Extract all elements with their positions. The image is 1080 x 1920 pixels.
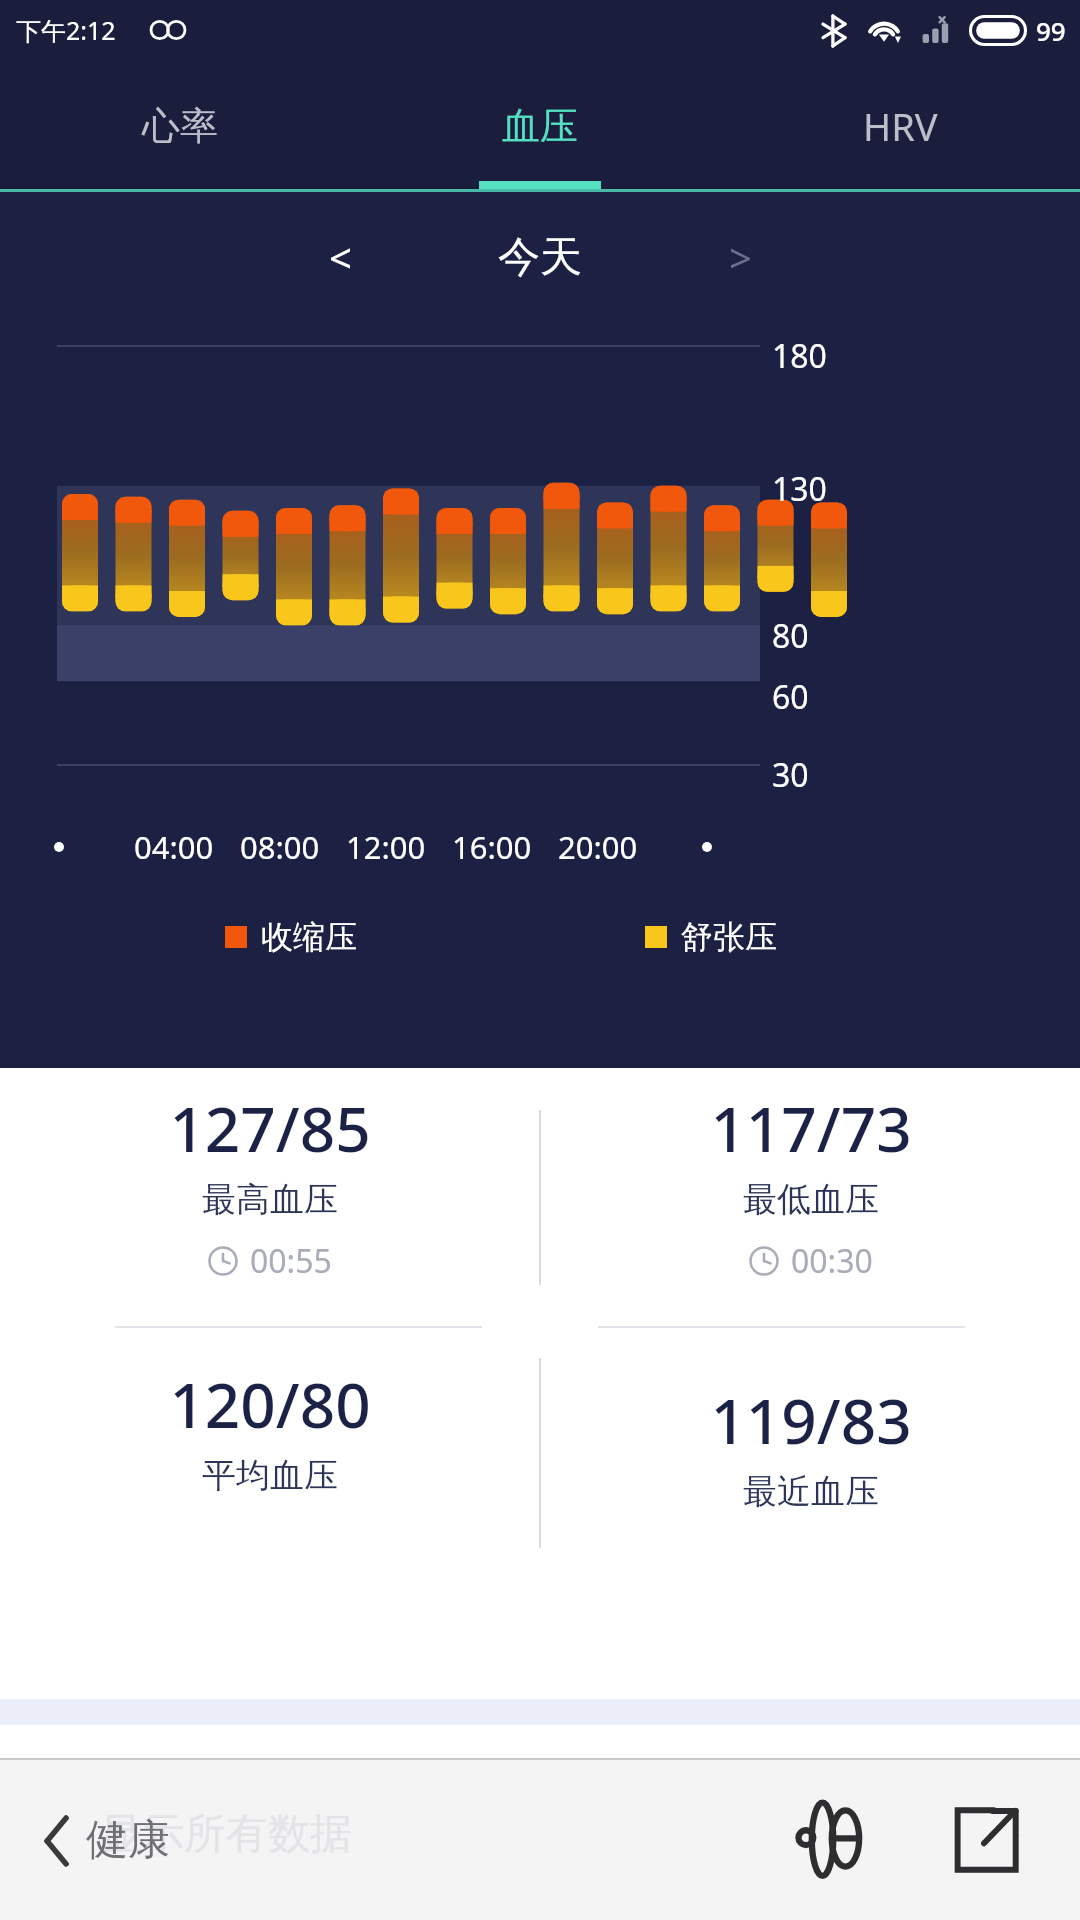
staticText: 最高血压 xyxy=(202,1178,338,1221)
staticText: 心率 xyxy=(142,102,218,150)
staticText: 60 xyxy=(772,675,809,719)
staticText: 80 xyxy=(772,614,809,658)
staticText: 最近血压 xyxy=(743,1470,879,1513)
staticText: 130 xyxy=(772,467,827,511)
staticText: 20:00 xyxy=(558,826,638,868)
staticText: < xyxy=(329,230,352,284)
button[interactable]: HRV xyxy=(720,60,1080,192)
staticText: 最低血压 xyxy=(743,1178,879,1221)
button[interactable]: 健康 xyxy=(44,1814,170,1867)
button[interactable]: 心率 xyxy=(0,60,360,192)
staticText: 117/73 xyxy=(710,1086,912,1170)
staticText: > xyxy=(729,230,752,284)
staticText: 12:00 xyxy=(346,826,426,868)
staticText: HRV xyxy=(863,100,938,152)
button[interactable]: 收缩压 xyxy=(225,917,357,957)
staticText: 30 xyxy=(772,753,809,797)
staticText: 127/85 xyxy=(169,1086,371,1170)
staticText: 180 xyxy=(772,334,827,378)
staticText: 下午2:12 xyxy=(16,13,116,47)
staticText: 04:00 xyxy=(134,826,214,868)
button[interactable]: 120/80 xyxy=(0,1328,539,1497)
staticText: 16:00 xyxy=(452,826,532,868)
staticText: 00:30 xyxy=(791,1239,873,1283)
staticText: 08:00 xyxy=(240,826,320,868)
button[interactable]: Share xyxy=(936,1790,1036,1890)
button[interactable]: Measure xyxy=(784,1790,884,1890)
staticText: 00:55 xyxy=(250,1239,332,1283)
staticText: 显示所有数据 xyxy=(100,1808,352,1861)
button[interactable]: 血压 xyxy=(360,60,720,192)
button[interactable]: 今天 xyxy=(498,231,582,284)
button[interactable]: 117/73 xyxy=(541,1068,1080,1283)
staticText: 平均血压 xyxy=(202,1454,338,1497)
staticText: 健康 xyxy=(86,1814,170,1867)
button[interactable]: Next day xyxy=(697,214,783,300)
staticText: 119/83 xyxy=(710,1378,912,1462)
staticText: 收缩压 xyxy=(261,917,357,957)
button[interactable]: 127/85 xyxy=(0,1068,539,1283)
button[interactable]: Previous day xyxy=(297,214,383,300)
staticText: 99 xyxy=(1036,13,1066,48)
staticText: 血压 xyxy=(502,102,578,150)
button[interactable]: 舒张压 xyxy=(645,917,777,957)
staticText: 今天 xyxy=(498,231,582,284)
button[interactable]: 119/83 xyxy=(541,1328,1080,1513)
staticText: 120/80 xyxy=(169,1362,371,1446)
staticText: 舒张压 xyxy=(681,917,777,957)
